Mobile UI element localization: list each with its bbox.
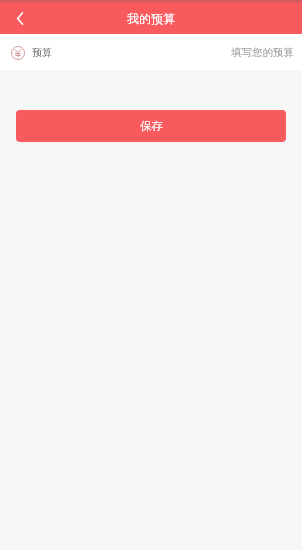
staticText: 预算 [32,46,52,59]
button[interactable]: Back [0,0,36,34]
button[interactable]: 预算 [0,34,302,70]
staticText: 填写您的预算 [231,46,294,59]
staticText: 我的预算 [127,11,175,26]
button[interactable]: 保存 [16,110,286,142]
staticText: 保存 [140,119,163,133]
